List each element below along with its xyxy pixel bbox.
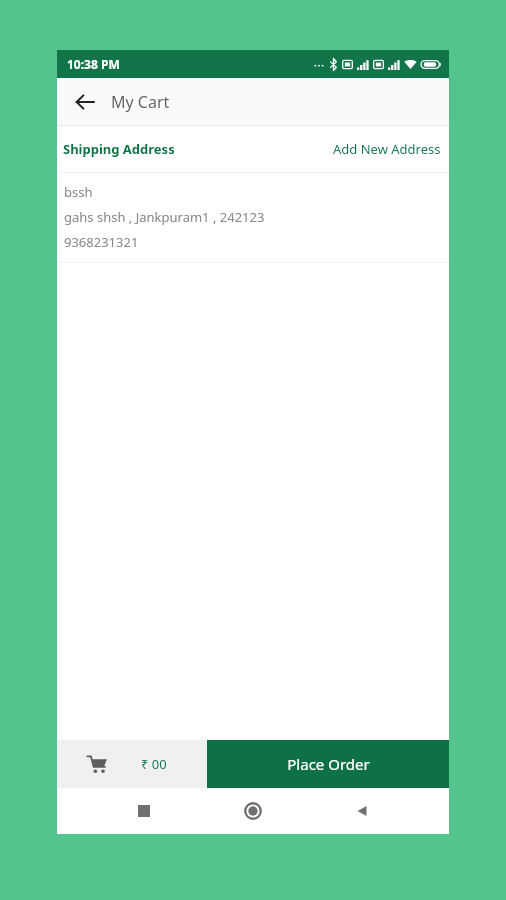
button[interactable]: Add New Address xyxy=(331,134,443,164)
button[interactable]: ₹ 00 xyxy=(57,740,207,788)
staticText: Shipping Address xyxy=(63,140,175,158)
staticText: My Cart xyxy=(111,91,170,113)
staticText: 10:38 PM xyxy=(67,56,120,72)
staticText: ₹ 00 xyxy=(141,755,167,773)
button[interactable]: Back xyxy=(340,789,384,833)
staticText: Add New Address xyxy=(333,140,441,158)
staticText: Place Order xyxy=(287,754,370,774)
button[interactable]: bssh xyxy=(57,173,449,262)
staticText: bssh xyxy=(64,183,93,201)
button[interactable]: Back xyxy=(67,84,103,120)
staticText: 9368231321 xyxy=(64,233,139,251)
staticText: gahs shsh , Jankpuram1 , 242123 xyxy=(64,208,265,226)
button[interactable]: Recent apps xyxy=(122,789,166,833)
button[interactable]: Place Order xyxy=(207,740,449,788)
button[interactable]: Home xyxy=(231,789,275,833)
